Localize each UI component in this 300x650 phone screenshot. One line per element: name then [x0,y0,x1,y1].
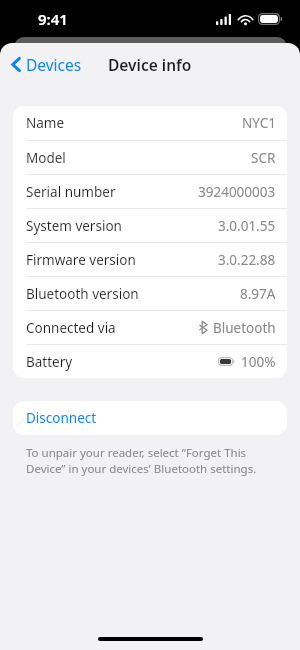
staticText: 9:41 [38,9,68,29]
staticText: Bluetooth version [26,285,139,303]
button[interactable]: Serial number [13,175,287,208]
staticText: 3.0.22.88 [218,251,276,269]
button[interactable]: Disconnect [13,401,287,435]
staticText: 100% [241,353,276,371]
staticText: Bluetooth [213,319,276,337]
staticText: 3924000003 [198,183,276,201]
staticText: Device info [108,54,192,75]
staticText: Devices [26,54,82,75]
other: Bluetooth [199,321,207,334]
staticText: Name [26,114,65,132]
button[interactable]: Battery [13,345,287,378]
staticText: 8.97A [240,285,276,303]
button[interactable]: Connected via [13,311,287,344]
button[interactable]: Name [13,106,287,140]
staticText: NYC1 [242,114,276,132]
staticText: Connected via [26,319,116,337]
staticText: Battery [26,353,73,371]
button[interactable]: Bluetooth version [13,277,287,310]
other: Battery full [218,357,235,366]
button[interactable]: Model [13,141,287,174]
staticText: Disconnect [26,409,97,427]
staticText: Model [26,149,66,167]
staticText: 3.0.01.55 [218,217,276,235]
staticText: SCR [251,149,276,167]
staticText: System version [26,217,122,235]
staticText: To unpair your reader, select “Forget Th… [26,445,270,476]
staticText: Serial number [26,183,116,201]
button[interactable]: System version [13,209,287,242]
button[interactable]: Firmware version [13,243,287,276]
staticText: Firmware version [26,251,136,269]
button[interactable]: Devices [0,47,90,82]
